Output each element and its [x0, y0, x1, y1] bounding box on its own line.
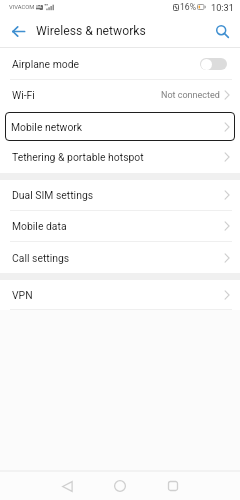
staticText: Mobile network — [11, 121, 83, 133]
staticText: Tethering & portable hotspot — [12, 151, 144, 163]
button[interactable]: VPN — [0, 280, 240, 309]
button[interactable]: Dual SIM settings — [0, 180, 240, 210]
button[interactable]: Airplane mode — [0, 48, 240, 79]
button[interactable]: Recents — [160, 473, 186, 499]
staticText: Dual SIM settings — [12, 189, 94, 201]
staticText: Airplane mode — [12, 58, 80, 70]
button[interactable]: Search — [210, 19, 234, 43]
staticText: Call settings — [12, 252, 70, 264]
staticText: VPN — [12, 289, 33, 301]
button[interactable]: Mobile network — [5, 112, 235, 141]
button[interactable]: Mobile data — [0, 211, 240, 241]
staticText: VoLTE — [36, 5, 43, 10]
button[interactable]: Tethering & portable hotspot — [0, 141, 240, 173]
staticText: Wi-Fi — [12, 89, 35, 101]
staticText: Mobile data — [12, 220, 67, 232]
staticText: Not connected — [161, 90, 220, 101]
button[interactable]: Call settings — [0, 242, 240, 273]
button[interactable]: Back — [54, 473, 80, 499]
button[interactable]: Wi-Fi — [0, 80, 240, 110]
staticText: VIVACOM — [9, 4, 35, 11]
staticText: 10:31 — [211, 2, 234, 13]
staticText: 16% — [180, 2, 196, 12]
button[interactable]: Back — [6, 19, 30, 43]
staticText: Wireless & networks — [36, 24, 146, 38]
button[interactable]: Home — [107, 473, 133, 499]
